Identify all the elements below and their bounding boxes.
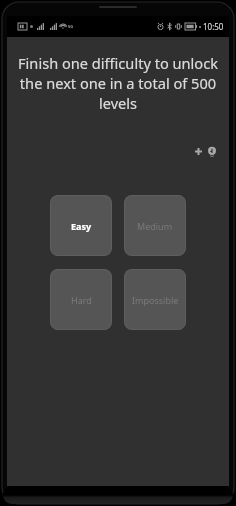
staticText: 10:50 — [203, 21, 224, 32]
staticText: Finish one difficulty to unlock the next… — [15, 53, 221, 113]
staticText: Easy — [71, 220, 92, 232]
button[interactable]: Hard — [50, 269, 112, 330]
button[interactable]: Add — [191, 144, 205, 158]
staticText: 5G — [68, 24, 74, 29]
button[interactable]: Impossible — [124, 269, 186, 330]
staticText: Medium — [137, 220, 173, 232]
staticText: Hard — [71, 294, 92, 306]
button[interactable]: Medium — [124, 195, 186, 256]
button[interactable]: Hint — [205, 145, 218, 158]
button[interactable]: Easy — [50, 195, 112, 256]
staticText: Impossible — [132, 294, 179, 306]
